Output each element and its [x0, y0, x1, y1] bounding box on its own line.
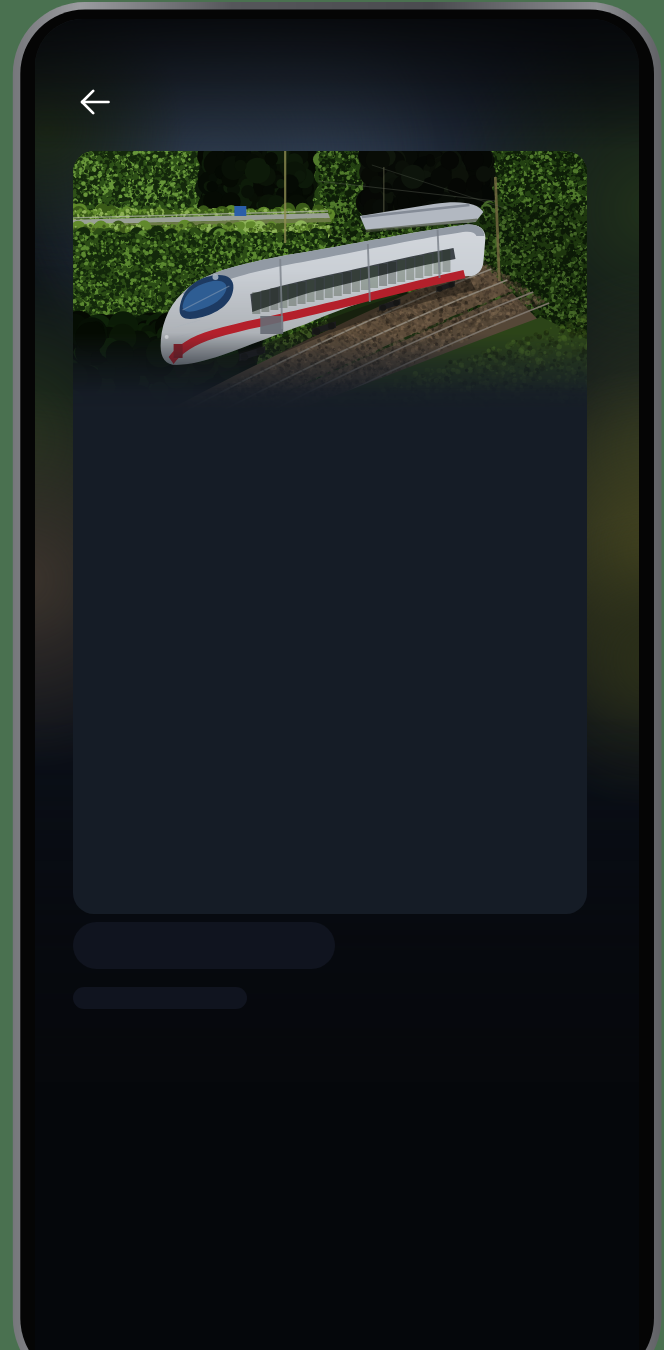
button[interactable] — [73, 151, 587, 914]
button[interactable]: Back — [71, 78, 119, 126]
